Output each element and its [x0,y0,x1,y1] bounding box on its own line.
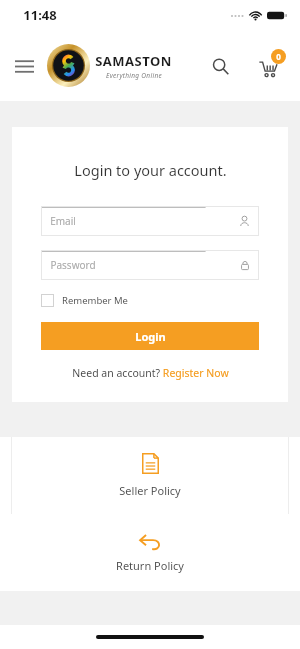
staticText: Everything Online [106,71,162,80]
staticText: Email [50,214,76,228]
staticText: Password [50,258,96,272]
button[interactable]: SAMASTON [47,44,172,87]
button[interactable]: Seller Policy [0,437,300,514]
button[interactable]: Menu [7,49,41,83]
button[interactable]: Need an account? Register Now [41,366,259,380]
button[interactable]: Remember Me [41,292,128,309]
staticText: Login [135,329,166,344]
button[interactable]: Email [41,206,259,236]
button[interactable]: Password [41,250,259,280]
button[interactable]: Login [41,322,259,350]
staticText: Seller Policy [119,483,181,498]
button[interactable]: Return Policy [0,514,300,591]
button[interactable]: Search [203,49,237,83]
staticText: 11:48 [23,6,57,24]
staticText: Return Policy [116,558,184,573]
staticText: Need an account? Register Now [72,366,229,380]
staticText: Login to your account. [74,160,227,180]
button[interactable]: Cart [249,47,287,85]
staticText: Remember Me [62,294,128,307]
staticText: SAMASTON [95,52,172,70]
staticText: 0 [276,51,281,62]
